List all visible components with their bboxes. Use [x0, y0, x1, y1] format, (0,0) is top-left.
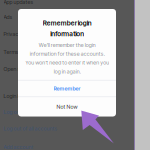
button[interactable]: Add account [0, 140, 134, 150]
staticText: Not Now [56, 104, 77, 110]
staticText: Log out [3, 109, 21, 115]
staticText: Privacy Policy [3, 31, 36, 37]
staticText: Log out of all accounts [3, 125, 57, 132]
button[interactable]: Open source libraries [0, 62, 134, 76]
staticText: Login info [3, 93, 26, 99]
staticText: Open source libraries [3, 66, 54, 72]
button[interactable]: Log out [0, 105, 134, 119]
button[interactable]: Not Now [18, 97, 116, 116]
staticText: Remember [53, 85, 80, 92]
button[interactable]: Terms of Use [0, 45, 134, 59]
button[interactable]: Remember [18, 80, 116, 96]
button[interactable]: Privacy Policy [0, 27, 134, 41]
staticText: Terms of Use [3, 49, 35, 55]
staticText: Remember login information [42, 19, 91, 38]
button[interactable]: Log out of all accounts [0, 121, 134, 135]
staticText: Ads [3, 14, 12, 20]
staticText: App updates [3, 0, 33, 5]
button[interactable]: Ads [0, 10, 134, 24]
staticText: We'll remember the login information for… [25, 42, 109, 75]
button[interactable]: App updates [0, 0, 134, 9]
button[interactable]: Login info [0, 89, 134, 103]
staticText: Add account [3, 144, 33, 150]
